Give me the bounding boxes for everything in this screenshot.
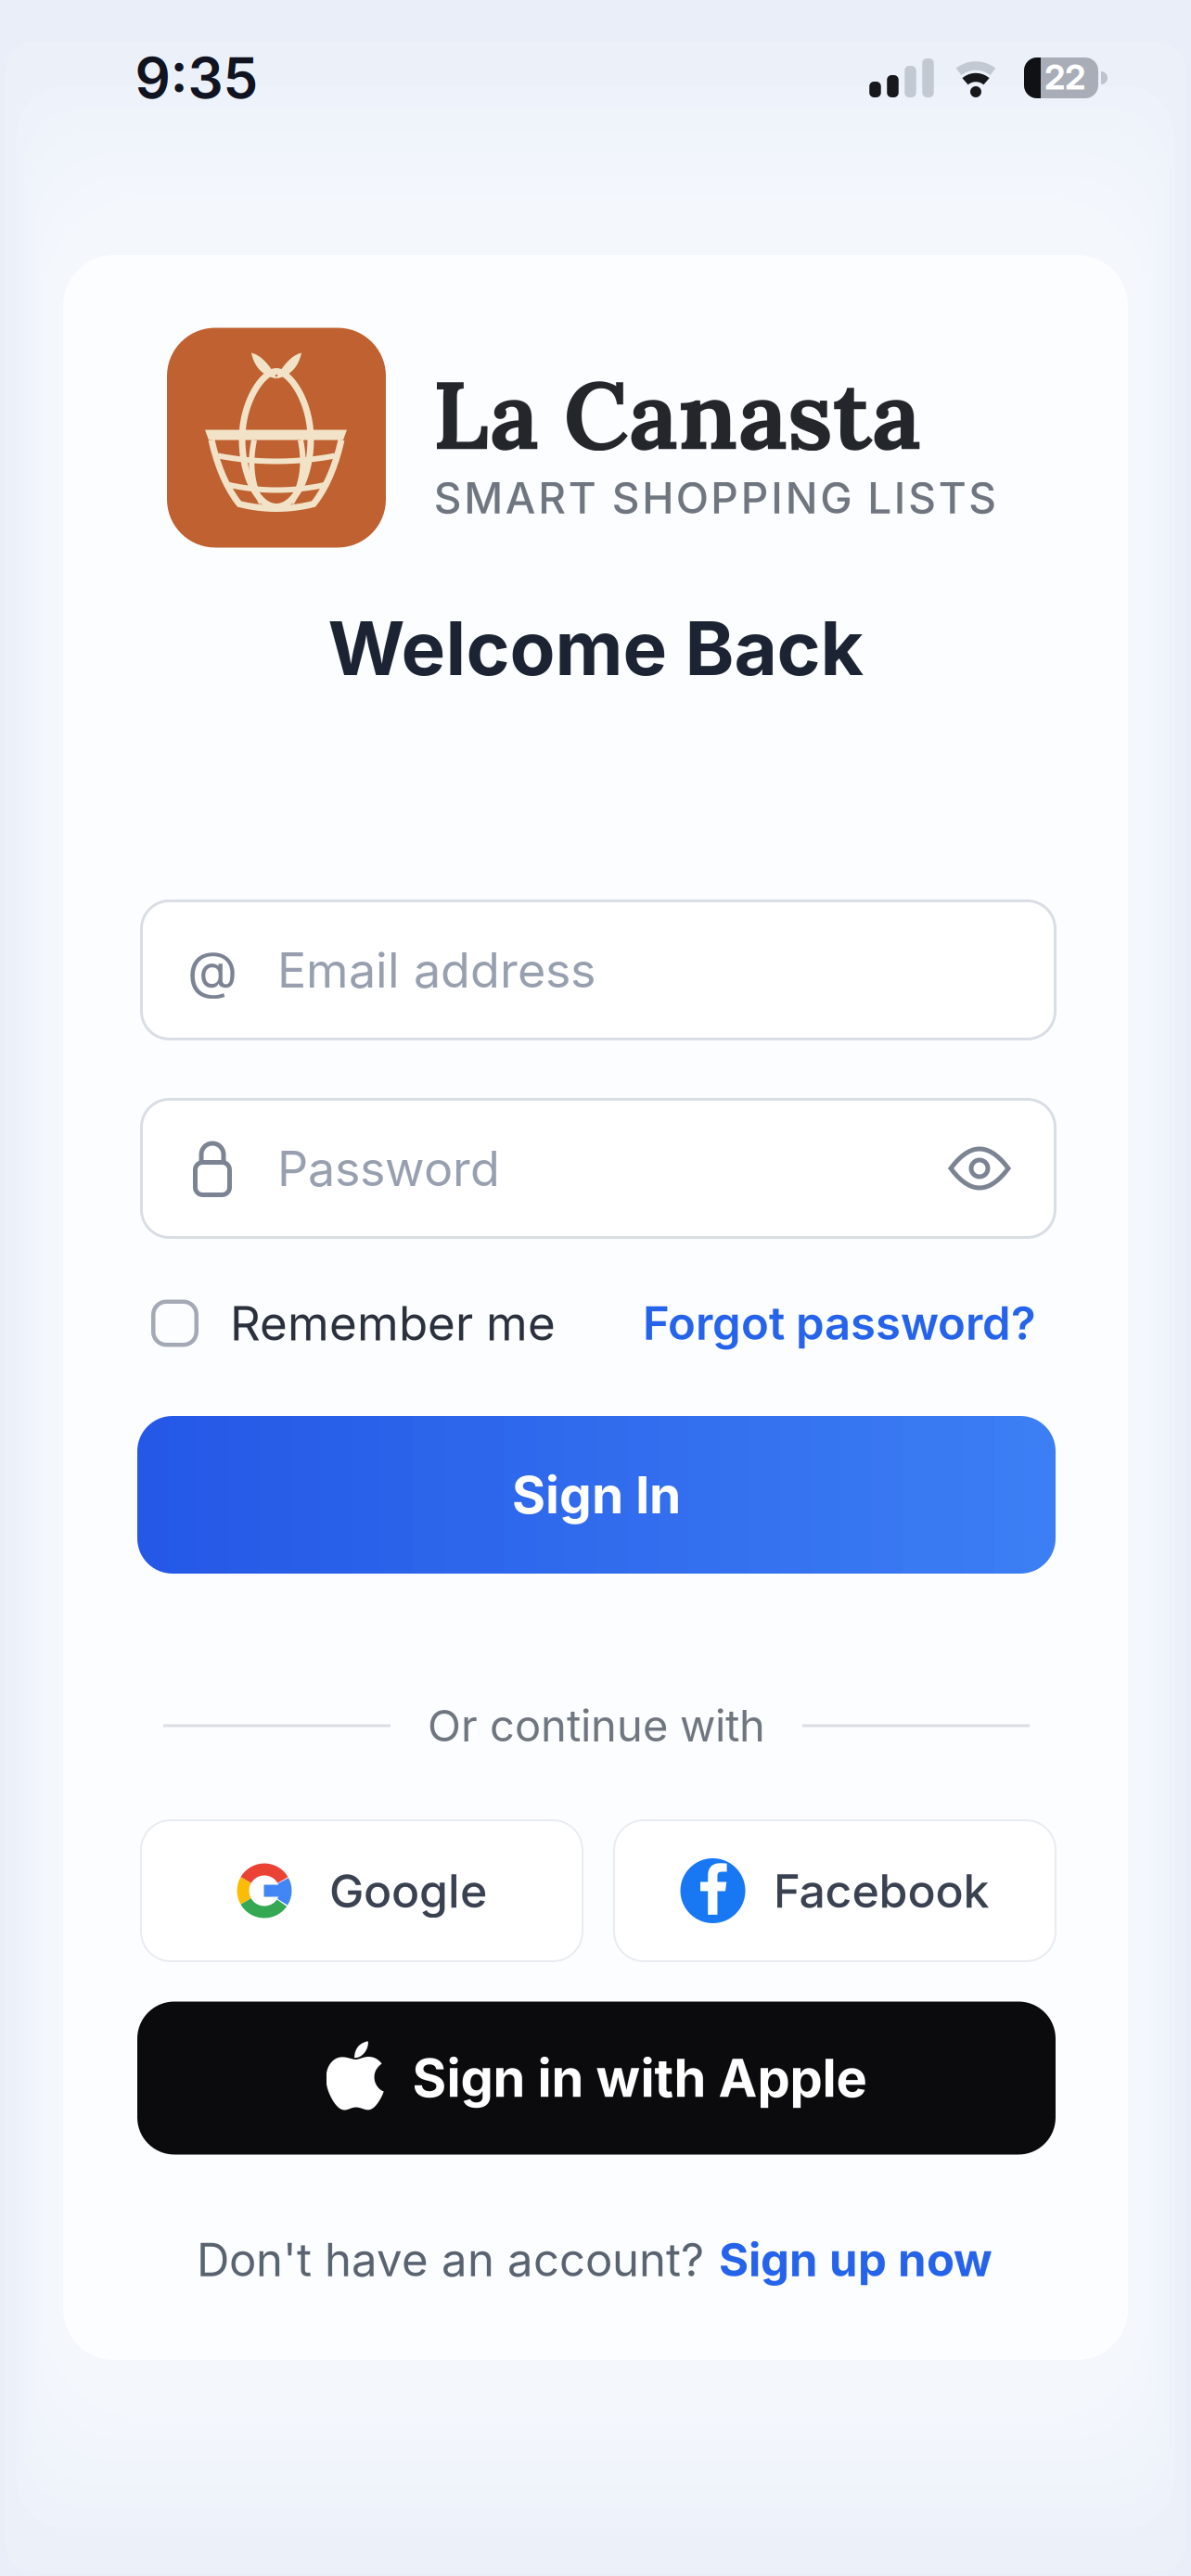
staticText: Sign in with Apple [412, 2047, 867, 2109]
staticText: Password [277, 1139, 500, 1197]
staticText: 9:35 [135, 44, 258, 112]
button[interactable]:  [137, 2002, 1056, 2155]
button[interactable]: Google [140, 1819, 583, 1962]
staticText: Welcome Back [328, 603, 863, 693]
button[interactable]: Forgot password? [643, 1296, 1036, 1351]
staticText: La Canasta [432, 354, 921, 475]
textField[interactable]: Email address [277, 941, 1010, 999]
staticText: Don't have an account? [197, 2232, 704, 2287]
staticText: Sign In [512, 1464, 681, 1526]
staticText: 22 [1044, 56, 1085, 98]
button[interactable]: Sign In [137, 1416, 1056, 1574]
staticText: Or continue with [428, 1699, 765, 1752]
button[interactable]: Remember me [151, 1295, 556, 1352]
staticText: Forgot password? [643, 1296, 1036, 1351]
button[interactable]: Show password [949, 1142, 1010, 1194]
staticText: @ [187, 939, 237, 1001]
secureTextField[interactable]: Password [277, 1139, 949, 1197]
staticText:  [697, 1863, 729, 1919]
staticText: Facebook [773, 1863, 989, 1919]
staticText: Google [329, 1863, 487, 1919]
staticText: Remember me [230, 1295, 556, 1352]
staticText: Email address [277, 941, 595, 999]
button[interactable]: Sign up now [719, 2232, 992, 2287]
staticText: Sign up now [719, 2232, 992, 2287]
staticText: SMART SHOPPING LISTS [434, 472, 996, 524]
staticText:  [326, 2041, 384, 2115]
button[interactable]:  [613, 1819, 1057, 1962]
